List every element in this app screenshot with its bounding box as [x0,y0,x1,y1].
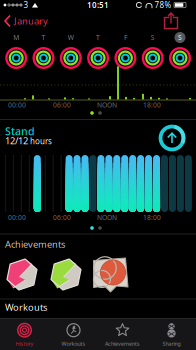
staticText: Workouts [5,301,47,313]
button[interactable]: F [112,29,139,70]
button[interactable] [158,124,185,151]
staticText: NOON [97,101,117,109]
staticText: S [178,33,182,42]
staticText: S [151,33,155,42]
staticText: Achievements [105,340,140,347]
button[interactable] [5,257,39,291]
staticText: Workouts [61,340,85,347]
staticText: F [124,33,127,42]
staticText: T [96,33,100,42]
staticText: 18:00 [143,213,161,222]
button[interactable]: T [30,29,57,70]
staticText: 18:00 [143,101,161,109]
button[interactable] [92,256,129,293]
staticText: 06:00 [53,213,71,222]
staticText: Achievements [5,238,65,250]
button[interactable]: Workouts [49,319,98,350]
staticText: hours [30,136,52,146]
button[interactable]: January [0,10,48,32]
button[interactable] [161,9,181,32]
staticText: History [15,340,33,347]
staticText: W [68,33,74,42]
button[interactable]: W [57,29,84,70]
staticText: 3 [23,0,28,10]
staticText: 12/12 [5,134,28,147]
button[interactable]: Sharing [147,319,196,350]
button[interactable]: Achievements [98,319,147,350]
staticText: 00:00 [8,213,26,222]
staticText: 78% [154,0,171,10]
button[interactable]: T [85,29,112,70]
staticText: M [13,33,19,42]
button[interactable]: S [166,29,193,70]
staticText: T [41,33,45,42]
button[interactable]: M [3,29,30,70]
staticText: 06:00 [53,101,71,109]
staticText: NOON [97,213,117,222]
staticText: 10:51 [87,0,109,10]
button[interactable]: History [0,319,49,350]
staticText: January [14,15,48,27]
button[interactable] [49,257,83,291]
staticText: Sharing [162,340,180,347]
button[interactable]: S [139,29,166,70]
staticText: 00:00 [8,101,26,109]
staticText: Stand [5,124,35,138]
